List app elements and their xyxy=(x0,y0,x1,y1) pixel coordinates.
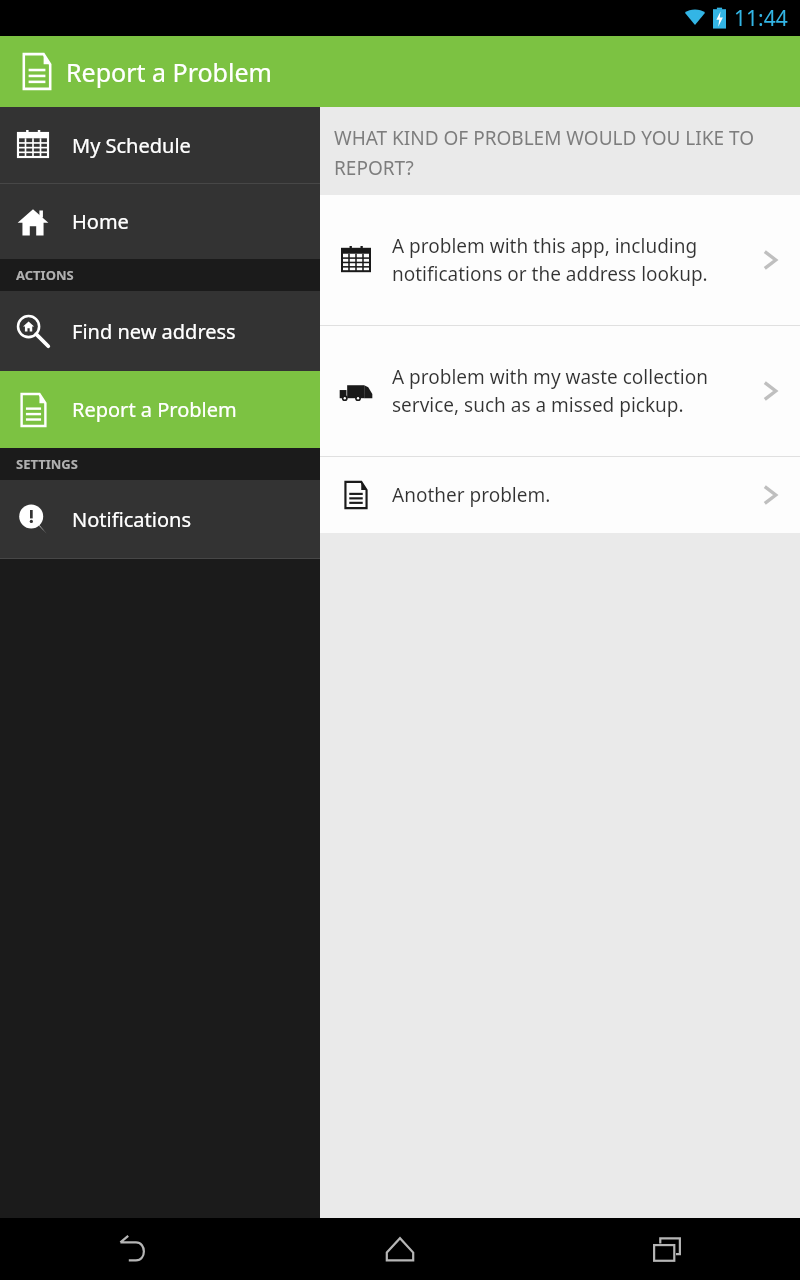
staticText: 11:44 xyxy=(734,4,788,33)
button[interactable]: Another problem. xyxy=(320,457,800,533)
staticText: SETTINGS xyxy=(16,455,78,473)
staticText: A problem with this app, including notif… xyxy=(392,233,724,287)
staticText: Find new address xyxy=(72,318,236,345)
button[interactable]: Find new address xyxy=(0,291,320,371)
staticText: WHAT KIND OF PROBLEM WOULD YOU LIKE TO R… xyxy=(334,125,790,180)
button[interactable]: A problem with my waste collection servi… xyxy=(320,326,800,456)
button[interactable]: Home xyxy=(0,184,320,259)
button[interactable]: Recent apps xyxy=(639,1221,695,1277)
staticText: Report a Problem xyxy=(66,55,272,89)
button[interactable]: Report a Problem xyxy=(0,371,320,448)
button[interactable]: Home xyxy=(372,1221,428,1277)
button[interactable]: Notifications xyxy=(0,480,320,558)
staticText: My Schedule xyxy=(72,132,191,159)
button[interactable]: Back xyxy=(105,1221,161,1277)
staticText: Another problem. xyxy=(392,482,724,508)
staticText: ACTIONS xyxy=(16,266,74,284)
button[interactable]: My Schedule xyxy=(0,107,320,183)
staticText: Notifications xyxy=(72,506,191,533)
staticText: A problem with my waste collection servi… xyxy=(392,364,724,418)
staticText: Home xyxy=(72,208,129,235)
button[interactable]: A problem with this app, including notif… xyxy=(320,195,800,325)
staticText: Report a Problem xyxy=(72,396,237,423)
